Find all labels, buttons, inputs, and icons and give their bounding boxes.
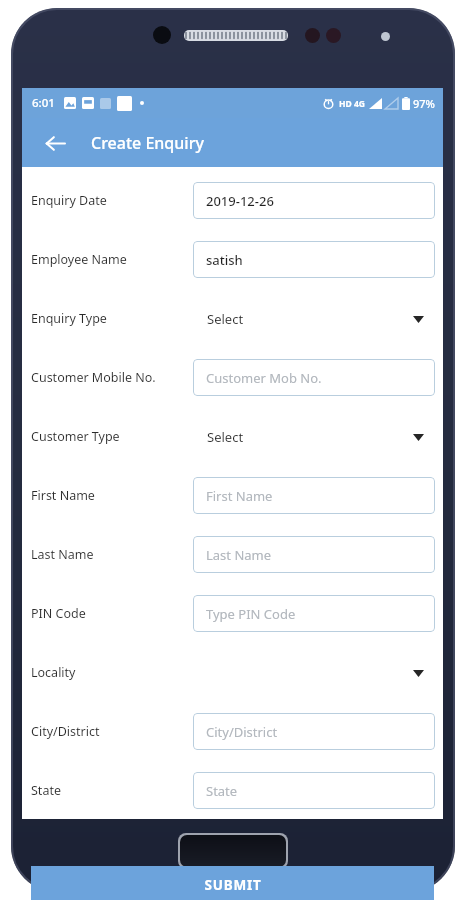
staticText: HD bbox=[339, 98, 352, 110]
staticText: Select bbox=[207, 310, 244, 328]
staticText: Enquiry Type bbox=[31, 310, 107, 327]
staticText: SUBMIT bbox=[204, 876, 262, 894]
staticText: Enquiry Date bbox=[31, 192, 107, 209]
staticText: 4G bbox=[354, 98, 366, 110]
staticText: 6:01 bbox=[32, 95, 55, 111]
button[interactable]: SUBMIT bbox=[31, 866, 434, 900]
staticText: State bbox=[206, 782, 238, 800]
button[interactable]: State bbox=[22, 761, 443, 819]
button[interactable]: Home bbox=[180, 835, 286, 867]
staticText: PIN Code bbox=[31, 605, 86, 622]
staticText: satish bbox=[206, 251, 243, 269]
staticText: City/District bbox=[206, 723, 278, 741]
staticText: City/District bbox=[31, 723, 100, 740]
staticText: State bbox=[31, 782, 61, 799]
button[interactable]: Employee Name bbox=[22, 230, 443, 289]
staticText: Customer Type bbox=[31, 428, 120, 445]
button[interactable]: PIN Code bbox=[22, 584, 443, 643]
button[interactable]: First Name bbox=[22, 466, 443, 525]
button[interactable]: Last Name bbox=[22, 525, 443, 584]
staticText: Create Enquiry bbox=[91, 132, 204, 154]
staticText: Employee Name bbox=[31, 251, 127, 268]
staticText: 2019-12-26 bbox=[206, 192, 274, 210]
staticText: 97% bbox=[413, 96, 435, 111]
button[interactable]: Locality bbox=[22, 643, 443, 702]
button[interactable]: Customer Mobile No. bbox=[22, 348, 443, 407]
button[interactable]: Enquiry Date bbox=[22, 171, 443, 230]
staticText: Type PIN Code bbox=[206, 605, 296, 623]
staticText: First Name bbox=[206, 487, 273, 505]
staticText: Locality bbox=[31, 664, 76, 681]
staticText: Last Name bbox=[206, 546, 272, 564]
staticText: Customer Mobile No. bbox=[31, 369, 156, 386]
staticText: Last Name bbox=[31, 546, 94, 563]
button[interactable]: Back bbox=[38, 126, 72, 160]
staticText: Select bbox=[207, 428, 244, 446]
staticText: Customer Mob No. bbox=[206, 369, 322, 387]
button[interactable]: Customer Type bbox=[22, 407, 443, 466]
button[interactable]: City/District bbox=[22, 702, 443, 761]
staticText: First Name bbox=[31, 487, 95, 504]
button[interactable]: Enquiry Type bbox=[22, 289, 443, 348]
